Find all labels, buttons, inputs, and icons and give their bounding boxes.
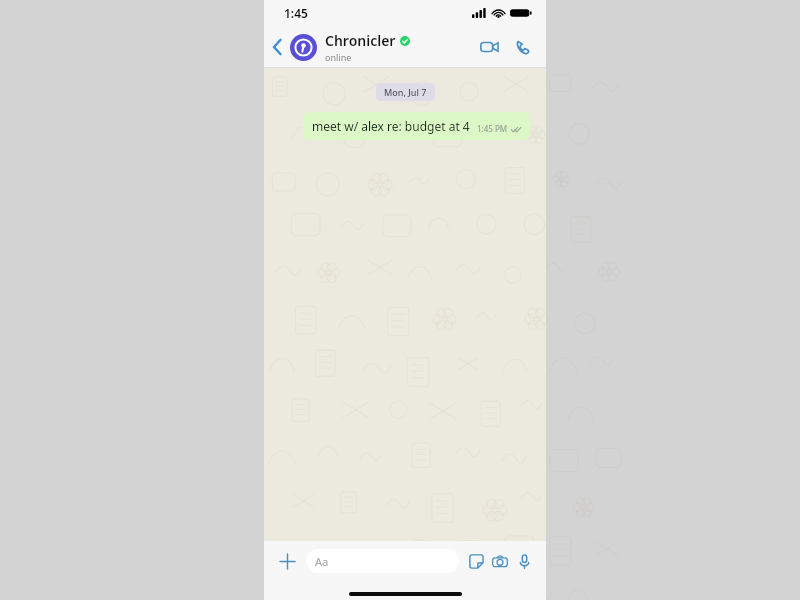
staticText: 1:45 [284,5,308,21]
staticText: Chronicler [325,31,396,50]
staticText: Mon, Jul 7 [384,86,427,98]
button[interactable]: meet w/ alex re: budget at 4 [303,112,530,140]
staticText: 1:45 PM [477,123,508,134]
button[interactable]: Voice message [512,549,536,573]
staticText: meet w/ alex re: budget at 4 [312,118,470,134]
button[interactable]: Camera [488,549,512,573]
button[interactable]: Back [264,26,290,68]
button[interactable]: Aa [306,549,459,573]
staticText: Aa [315,554,329,569]
staticText: online [325,51,352,63]
button[interactable]: Video call [472,26,506,68]
button[interactable]: Stickers [464,549,488,573]
button[interactable]: Voice call [506,26,540,68]
button[interactable]: Mon, Jul 7 [376,83,435,101]
button[interactable]: Attach [274,548,300,574]
button[interactable]: Chronicler [290,26,472,68]
